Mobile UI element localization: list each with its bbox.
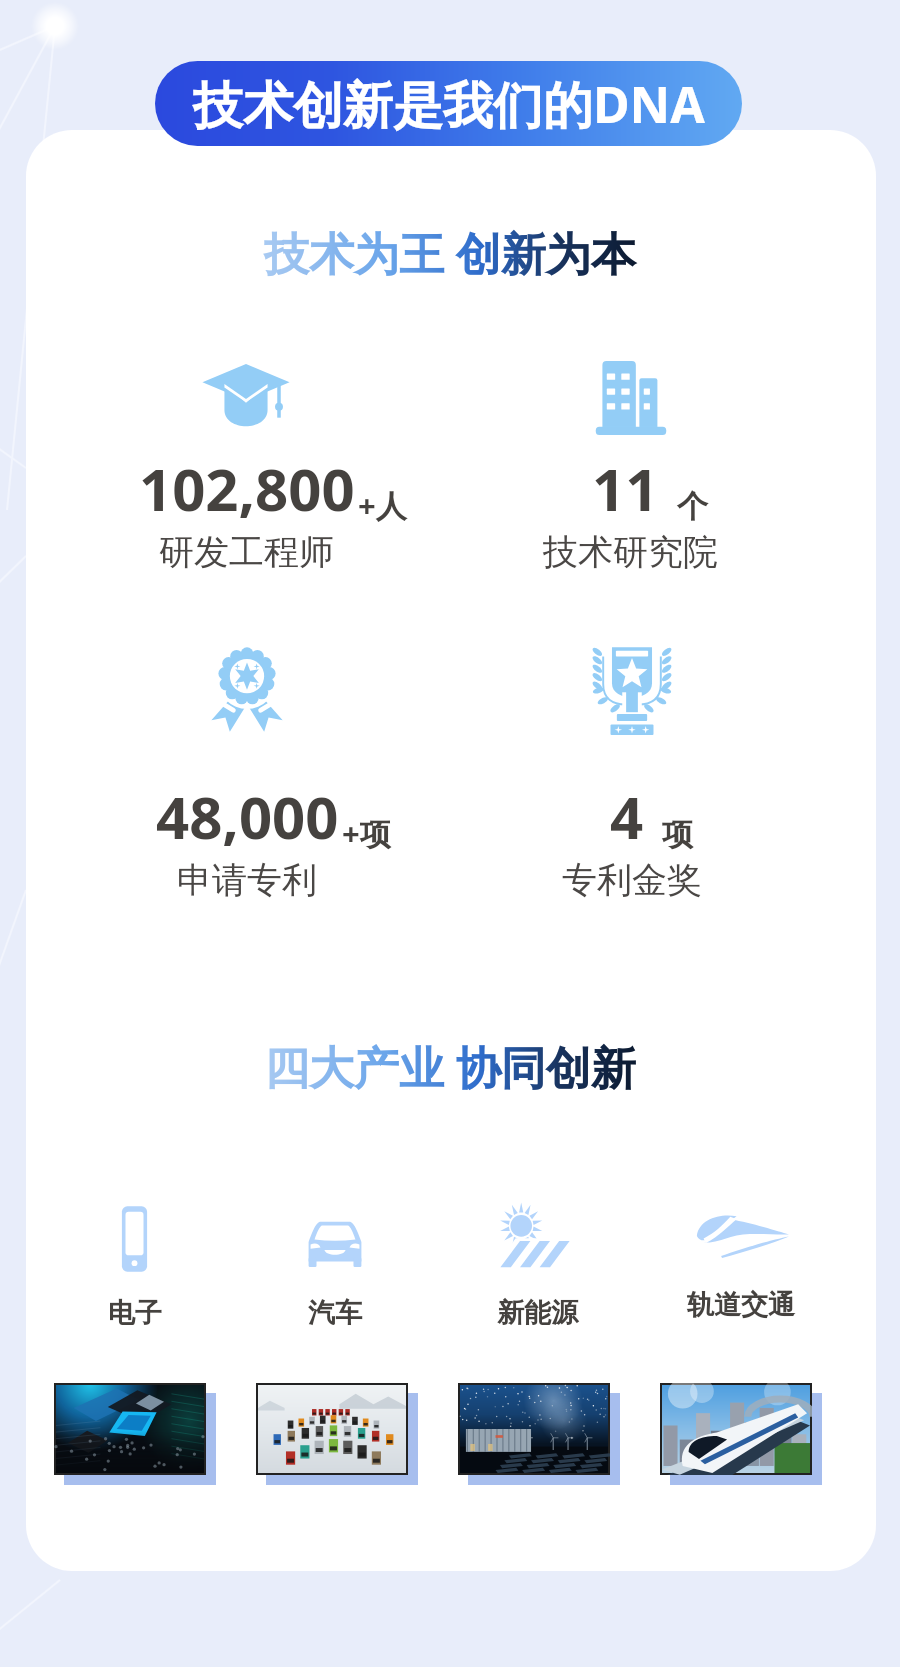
- button[interactable]: 11: [430, 350, 830, 574]
- staticText: 48,000: [156, 777, 339, 856]
- button[interactable]: [54, 1383, 206, 1475]
- staticText: 个: [677, 487, 708, 526]
- staticText: 轨道交通: [687, 1288, 795, 1322]
- button[interactable]: 新能源: [498, 1201, 578, 1270]
- button[interactable]: 102,800: [46, 350, 446, 574]
- staticText: 技术创新是我们的DNA: [193, 70, 705, 138]
- button[interactable]: 轨道交通: [692, 1209, 789, 1258]
- staticText: +人: [358, 484, 407, 526]
- staticText: 4: [610, 777, 644, 856]
- button[interactable]: [660, 1383, 812, 1475]
- staticText: +项: [342, 812, 391, 854]
- staticText: 专利金奖: [562, 858, 702, 902]
- staticText: 四大产业 协同创新: [264, 1036, 636, 1097]
- staticText: 新能源: [497, 1296, 578, 1330]
- staticText: 申请专利: [177, 858, 317, 902]
- staticText: 技术为王 创新为本: [264, 222, 636, 283]
- button[interactable]: 48,000: [46, 678, 446, 902]
- button[interactable]: 技术创新是我们的DNA: [155, 61, 742, 146]
- button[interactable]: 电子: [112, 1205, 157, 1273]
- staticText: 102,800: [139, 449, 355, 528]
- button[interactable]: [458, 1383, 610, 1475]
- staticText: 技术研究院: [543, 530, 718, 574]
- button[interactable]: 4: [432, 678, 832, 902]
- staticText: 电子: [108, 1296, 162, 1330]
- staticText: 11: [592, 449, 659, 528]
- staticText: 项: [662, 815, 693, 854]
- staticText: 研发工程师: [159, 530, 334, 574]
- button[interactable]: 汽车: [302, 1206, 368, 1269]
- staticText: 汽车: [308, 1296, 362, 1330]
- button[interactable]: [256, 1383, 408, 1475]
